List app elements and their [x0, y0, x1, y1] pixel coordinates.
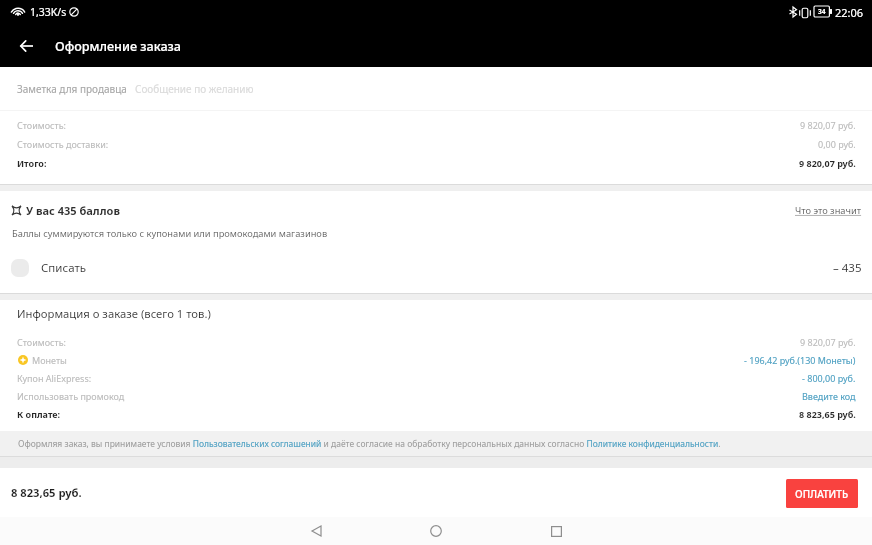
button[interactable]: Заметка для продавца — [0, 67, 872, 110]
staticText: 9 820,07 руб. — [800, 119, 856, 131]
staticText: К оплате: — [17, 408, 61, 420]
staticText: 1,33K/s — [30, 5, 67, 19]
staticText: - 800,00 руб. — [802, 372, 856, 384]
staticText: Оформление заказа — [55, 38, 182, 55]
button[interactable]: Что это значит — [795, 204, 862, 217]
staticText: 9 820,07 руб. — [799, 157, 856, 169]
staticText: У вас 435 баллов — [26, 203, 120, 218]
staticText: – 435 — [833, 260, 862, 276]
staticText: 22:06 — [835, 5, 864, 20]
staticText: - 196,42 руб.(130 Монеты) — [744, 354, 856, 366]
staticText: 0,00 руб. — [818, 138, 856, 150]
staticText: Что это значит — [795, 204, 862, 217]
staticText: 34 — [818, 7, 826, 16]
button[interactable]: Купон AliExpress: — [0, 369, 872, 387]
staticText: Купон AliExpress: — [17, 372, 92, 384]
staticText: Информация о заказе (всего 1 тов.) — [17, 306, 211, 321]
staticText: Списать — [41, 260, 87, 276]
staticText: Итого: — [17, 157, 47, 169]
staticText: Сообщение по желанию — [135, 82, 254, 96]
staticText: Стоимость: — [17, 336, 66, 348]
staticText: Оформляя заказ, вы принимаете условия По… — [18, 438, 721, 450]
staticText: Стоимость: — [17, 119, 66, 131]
button[interactable]: ОПЛАТИТЬ — [786, 479, 858, 508]
button[interactable]: Home — [416, 517, 456, 545]
button[interactable]: Back — [5, 25, 47, 67]
staticText: Монеты — [32, 354, 67, 366]
staticText: Баллы суммируются только с купонами или … — [12, 227, 328, 240]
staticText: Заметка для продавца — [17, 82, 127, 96]
button[interactable]: Списать — [0, 243, 872, 293]
staticText: Введите код — [802, 390, 856, 402]
button[interactable]: Back — [296, 517, 336, 545]
button[interactable]: Recents — [536, 517, 576, 545]
staticText: 8 823,65 руб. — [799, 408, 856, 420]
staticText: ОПЛАТИТЬ — [795, 487, 849, 501]
staticText: 9 820,07 руб. — [800, 336, 856, 348]
staticText: Использовать промокод — [17, 390, 125, 402]
staticText: Стоимость доставки: — [17, 138, 109, 150]
staticText: 8 823,65 руб. — [11, 485, 82, 500]
button[interactable]: Использовать промокод — [0, 387, 872, 405]
